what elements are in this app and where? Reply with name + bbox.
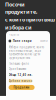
staticText: Избери продуктите, които вече имаш вкъщи… xyxy=(9,45,45,60)
staticText: Посочи продуктите, xyxy=(5,1,38,15)
button[interactable]: Продължи xyxy=(9,85,35,90)
staticText: Рецепта xyxy=(9,33,19,37)
staticText: Общо 12,40 лв. xyxy=(9,73,33,77)
staticText: Добави всичко xyxy=(9,79,33,83)
staticText: Пиле с къри xyxy=(13,39,32,43)
staticText: с които приготвяш xyxy=(5,16,55,23)
staticText: избора си xyxy=(5,24,32,31)
staticText: Пилешко филе xyxy=(9,62,29,65)
staticText: смени xyxy=(40,39,48,43)
button[interactable]: Добави всичко xyxy=(9,79,33,83)
staticText: Ориз басмати xyxy=(9,67,27,71)
staticText: Продължи xyxy=(14,86,30,89)
